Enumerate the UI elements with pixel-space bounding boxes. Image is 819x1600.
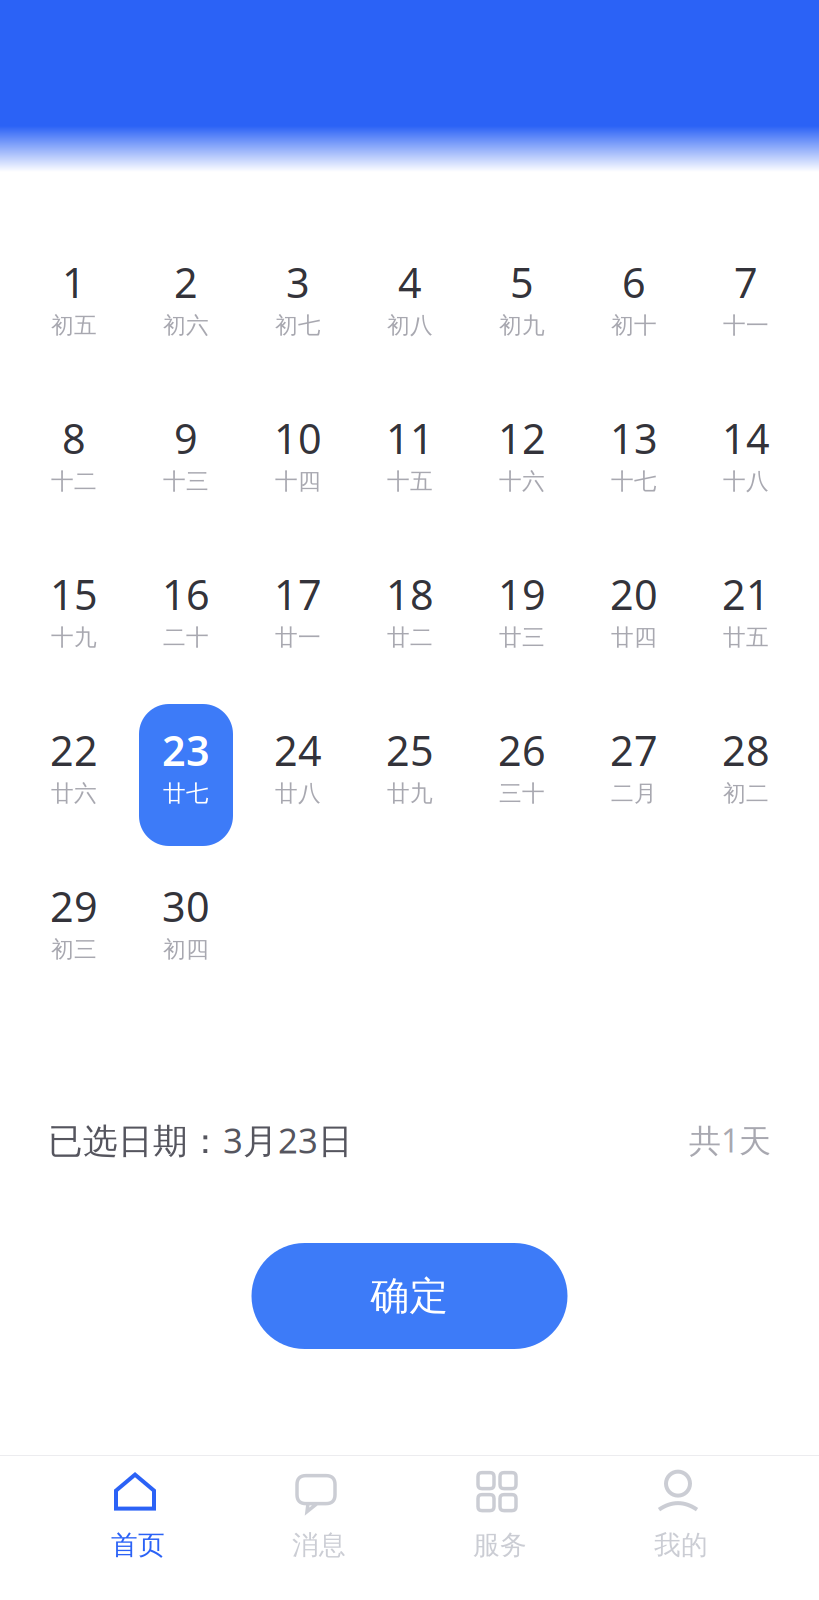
staticText: 9: [174, 411, 198, 465]
button[interactable]: 6: [578, 219, 690, 375]
staticText: 十八: [723, 467, 769, 495]
button[interactable]: 21: [690, 531, 802, 687]
button[interactable]: 10: [242, 375, 354, 531]
staticText: 11: [386, 411, 434, 465]
staticText: 廿六: [51, 779, 97, 807]
staticText: 初四: [163, 935, 209, 963]
staticText: 廿三: [499, 623, 545, 651]
staticText: 确定: [370, 1272, 448, 1320]
button[interactable]: 5: [466, 219, 578, 375]
staticText: 初七: [275, 311, 321, 339]
staticText: 廿五: [723, 623, 769, 651]
staticText: 22: [50, 723, 98, 777]
staticText: 廿二: [387, 623, 433, 651]
staticText: 12: [498, 411, 546, 465]
button[interactable]: 17: [242, 531, 354, 687]
staticText: 初二: [723, 779, 769, 807]
staticText: 21: [722, 567, 770, 621]
staticText: 4: [398, 255, 422, 309]
staticText: 共1天: [689, 1119, 771, 1161]
staticText: 30: [162, 879, 210, 933]
staticText: 廿八: [275, 779, 321, 807]
button[interactable]: 11: [354, 375, 466, 531]
staticText: 三十: [499, 779, 545, 807]
staticText: 8: [62, 411, 86, 465]
staticText: 十一: [723, 311, 769, 339]
staticText: 十九: [51, 623, 97, 651]
button[interactable]: 我的: [590, 1456, 771, 1574]
staticText: 19: [498, 567, 546, 621]
staticText: 初六: [163, 311, 209, 339]
staticText: 29: [50, 879, 98, 933]
staticText: 27: [610, 723, 658, 777]
staticText: 廿九: [387, 779, 433, 807]
button[interactable]: 首页: [47, 1456, 228, 1574]
staticText: 已选日期：3月23日: [48, 1117, 353, 1163]
staticText: 十三: [163, 467, 209, 495]
staticText: 初三: [51, 935, 97, 963]
staticText: 二月: [611, 779, 657, 807]
staticText: 服务: [473, 1529, 527, 1561]
button[interactable]: 4: [354, 219, 466, 375]
staticText: 十二: [51, 467, 97, 495]
button[interactable]: 24: [242, 687, 354, 843]
button[interactable]: 13: [578, 375, 690, 531]
staticText: 26: [498, 723, 546, 777]
button[interactable]: 9: [130, 375, 242, 531]
staticText: 20: [610, 567, 658, 621]
staticText: 十六: [499, 467, 545, 495]
staticText: 2: [174, 255, 198, 309]
staticText: 十五: [387, 467, 433, 495]
staticText: 消息: [292, 1529, 346, 1561]
button[interactable]: 30: [130, 843, 242, 999]
staticText: 首页: [111, 1529, 165, 1561]
staticText: 十七: [611, 467, 657, 495]
button[interactable]: 2: [130, 219, 242, 375]
button[interactable]: 15: [18, 531, 130, 687]
staticText: 24: [274, 723, 322, 777]
staticText: 17: [274, 567, 322, 621]
staticText: 初八: [387, 311, 433, 339]
staticText: 初十: [611, 311, 657, 339]
staticText: 6: [622, 255, 646, 309]
staticText: 1: [62, 255, 86, 309]
staticText: 廿七: [163, 779, 209, 807]
button[interactable]: 12: [466, 375, 578, 531]
staticText: 7: [734, 255, 758, 309]
button[interactable]: 28: [690, 687, 802, 843]
staticText: 18: [386, 567, 434, 621]
staticText: 十四: [275, 467, 321, 495]
button[interactable]: 26: [466, 687, 578, 843]
staticText: 15: [50, 567, 98, 621]
staticText: 初五: [51, 311, 97, 339]
staticText: 25: [386, 723, 434, 777]
button[interactable]: 27: [578, 687, 690, 843]
staticText: 5: [510, 255, 534, 309]
staticText: 10: [274, 411, 322, 465]
staticText: 28: [722, 723, 770, 777]
button[interactable]: 服务: [409, 1456, 590, 1574]
staticText: 23: [162, 723, 210, 777]
button[interactable]: 14: [690, 375, 802, 531]
button[interactable]: 19: [466, 531, 578, 687]
button[interactable]: 23: [130, 687, 242, 843]
staticText: 13: [610, 411, 658, 465]
button[interactable]: 20: [578, 531, 690, 687]
button[interactable]: 8: [18, 375, 130, 531]
button[interactable]: 29: [18, 843, 130, 999]
staticText: 14: [722, 411, 770, 465]
button[interactable]: 1: [18, 219, 130, 375]
staticText: 初九: [499, 311, 545, 339]
staticText: 3: [286, 255, 310, 309]
staticText: 廿一: [275, 623, 321, 651]
button[interactable]: 18: [354, 531, 466, 687]
button[interactable]: 消息: [228, 1456, 409, 1574]
button[interactable]: 22: [18, 687, 130, 843]
staticText: 廿四: [611, 623, 657, 651]
button[interactable]: 7: [690, 219, 802, 375]
button[interactable]: 3: [242, 219, 354, 375]
button[interactable]: 确定: [251, 1243, 567, 1349]
button[interactable]: 16: [130, 531, 242, 687]
button[interactable]: 25: [354, 687, 466, 843]
